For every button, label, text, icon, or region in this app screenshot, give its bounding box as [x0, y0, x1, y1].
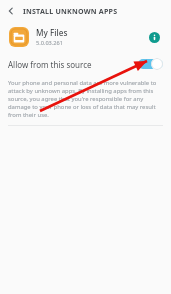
button[interactable]: App info [145, 28, 163, 46]
staticText: Your phone and personal data are more vu… [8, 79, 163, 119]
button[interactable]: Allow from this source, on [138, 56, 163, 72]
staticText: INSTALL UNKNOWN APPS [23, 6, 118, 16]
button[interactable]: Navigate up [0, 0, 22, 22]
button[interactable]: My Files [0, 22, 171, 52]
staticText: 5.0.03.261 [36, 39, 63, 47]
button[interactable]: Allow from this source [0, 52, 171, 76]
staticText: My Files [36, 27, 68, 38]
staticText: Allow from this source [8, 59, 138, 70]
